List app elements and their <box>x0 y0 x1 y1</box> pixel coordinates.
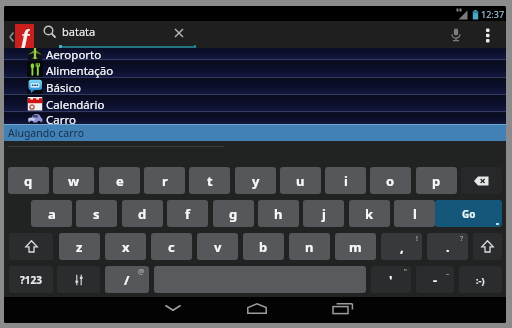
staticText: s <box>93 205 100 223</box>
button[interactable]: j <box>303 200 344 227</box>
staticText: :-) <box>476 274 485 286</box>
staticText: c <box>168 238 175 256</box>
button[interactable] <box>174 28 184 38</box>
staticText: ? <box>460 234 464 244</box>
button[interactable]: ƒ <box>15 24 34 49</box>
button[interactable]: a <box>31 200 72 227</box>
staticText: m <box>349 238 362 256</box>
staticText: Carro <box>46 112 76 124</box>
staticText: o <box>386 172 395 190</box>
staticText: x <box>122 238 130 256</box>
button[interactable] <box>461 167 502 194</box>
button[interactable]: l <box>394 200 435 227</box>
button[interactable]: / <box>105 266 149 293</box>
button[interactable] <box>4 95 506 112</box>
button[interactable]: Go <box>435 200 502 227</box>
staticText: l <box>413 205 417 223</box>
staticText: h <box>274 205 283 223</box>
button[interactable]: Alugando carro <box>4 124 506 141</box>
button[interactable] <box>57 266 100 293</box>
button[interactable] <box>473 233 502 260</box>
staticText: z <box>76 238 83 256</box>
button[interactable] <box>4 21 506 48</box>
button[interactable]: , <box>381 233 422 260</box>
button[interactable]: x <box>105 233 146 260</box>
button[interactable]: n <box>289 233 330 260</box>
staticText: ƒ <box>19 24 30 49</box>
button[interactable]: ?123 <box>9 266 53 293</box>
staticText: t <box>207 172 213 190</box>
button[interactable] <box>4 48 506 60</box>
button[interactable]: t <box>189 167 230 194</box>
button[interactable] <box>450 28 462 43</box>
button[interactable]: y <box>235 167 276 194</box>
staticText: ! <box>416 234 418 244</box>
button[interactable]: ' <box>371 266 411 293</box>
button[interactable]: s <box>76 200 117 227</box>
staticText: 12:37 <box>481 8 505 20</box>
staticText: f <box>185 205 191 223</box>
button[interactable]: m <box>335 233 376 260</box>
staticText: v <box>214 238 222 256</box>
staticText: w <box>68 172 80 190</box>
button[interactable] <box>4 78 506 95</box>
button[interactable]: c <box>151 233 192 260</box>
staticText: Go <box>462 207 476 221</box>
staticText: @ <box>138 267 145 277</box>
button[interactable]: k <box>349 200 390 227</box>
staticText: b <box>259 238 268 256</box>
staticText: Alugando carro <box>8 126 85 140</box>
button[interactable]: i <box>325 167 366 194</box>
button[interactable] <box>483 27 493 45</box>
staticText: Calendário <box>46 97 105 113</box>
staticText: Aeroporto <box>46 48 102 63</box>
staticText: _ <box>446 267 450 277</box>
staticText: ' <box>389 271 393 289</box>
button[interactable]: . <box>427 233 468 260</box>
button[interactable]: p <box>416 167 457 194</box>
staticText: u <box>296 172 305 190</box>
button[interactable] <box>165 303 181 313</box>
button[interactable] <box>247 303 267 314</box>
staticText: d <box>138 205 147 223</box>
button[interactable]: z <box>59 233 100 260</box>
button[interactable]: q <box>8 167 49 194</box>
staticText: ?123 <box>20 273 42 287</box>
button[interactable]: h <box>258 200 299 227</box>
button[interactable]: :-) <box>459 266 502 293</box>
button[interactable]: d <box>122 200 163 227</box>
staticText: Básico <box>46 80 81 96</box>
button[interactable] <box>332 303 354 314</box>
button[interactable] <box>4 113 506 124</box>
staticText: i <box>344 172 348 190</box>
button[interactable]: f <box>167 200 208 227</box>
staticText: r <box>162 172 168 190</box>
button[interactable]: - <box>416 266 454 293</box>
button[interactable]: b <box>243 233 284 260</box>
staticText: k <box>365 205 374 223</box>
staticText: Alimentação <box>46 63 114 79</box>
staticText: , <box>400 238 404 256</box>
button[interactable] <box>9 233 53 260</box>
staticText: n <box>305 238 314 256</box>
button[interactable]: r <box>144 167 185 194</box>
button[interactable]: u <box>280 167 321 194</box>
staticText: e <box>116 172 124 190</box>
button[interactable]: w <box>53 167 94 194</box>
staticText: j <box>322 205 326 223</box>
staticText: y <box>252 172 260 190</box>
staticText: a <box>48 205 56 223</box>
button[interactable]: batata <box>62 19 142 43</box>
staticText: / <box>124 271 130 289</box>
button[interactable] <box>4 61 506 78</box>
button[interactable]: g <box>213 200 254 227</box>
button[interactable]: v <box>197 233 238 260</box>
staticText: g <box>229 205 238 223</box>
button[interactable]: o <box>370 167 411 194</box>
button[interactable]: e <box>99 167 140 194</box>
staticText: batata <box>62 24 96 39</box>
staticText: p <box>432 172 441 190</box>
staticText: q <box>24 172 33 190</box>
staticText: - <box>433 271 438 289</box>
